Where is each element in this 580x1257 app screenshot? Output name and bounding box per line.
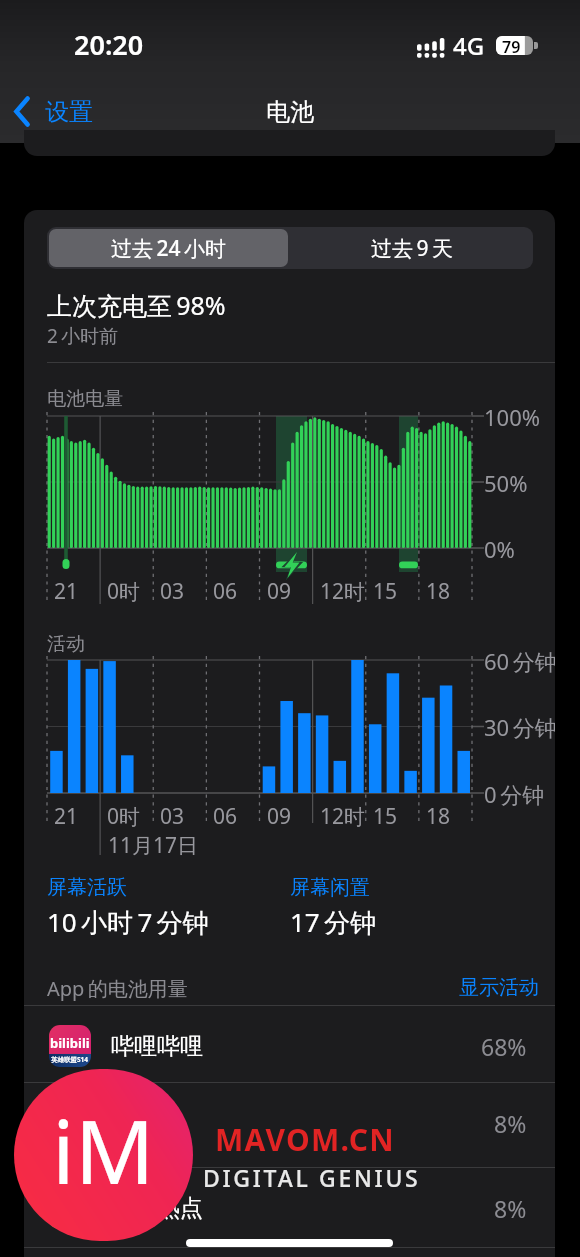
staticText: 18 [426,802,451,831]
staticText: 79 [502,36,521,55]
staticText: 100% [484,402,541,432]
staticText: App 的电池用量 [47,975,188,1002]
button[interactable]: 显示活动 [459,975,539,1000]
staticText: 12时 [320,577,366,606]
staticText: 21 [54,577,79,606]
button[interactable]: 微信 [24,1083,555,1163]
staticText: 11月17日 [108,831,199,860]
staticText: 电池电量 [47,387,123,411]
button[interactable]: 过去 9 天 [290,227,533,269]
staticText: 设置 [45,97,93,127]
staticText: 03 [160,577,185,606]
staticText: 09 [267,577,292,606]
staticText: 8% [494,1193,527,1224]
staticText: 活动 [47,632,85,656]
staticText: 哔哩哔哩 [111,1032,481,1061]
staticText: 0 分钟 [484,779,545,809]
staticText: 微信 [111,1109,494,1138]
staticText: 电池 [266,97,314,127]
staticText: bilibili [50,1034,90,1052]
button[interactable]: bilibili [24,1006,555,1086]
staticText: 个人热点 [111,1194,494,1223]
staticText: 60 分钟 [484,646,555,676]
staticText: 50% [484,468,528,498]
button[interactable]: 个人热点 [24,1168,555,1248]
staticText: DIGITAL GENIUS [203,1162,421,1193]
staticText: 屏幕活跃 [47,875,127,900]
staticText: 12时 [320,802,366,831]
staticText: 10 小时 7 分钟 [47,904,209,940]
staticText: 英雄联盟S14 [51,1055,89,1064]
staticText: 20:20 [74,26,144,63]
staticText: 8% [494,1108,527,1139]
staticText: 上次充电至 98% [47,288,226,322]
staticText: 09 [267,802,292,831]
staticText: 17 分钟 [290,904,377,940]
staticText: 06 [213,577,238,606]
staticText: 03 [160,802,185,831]
staticText: 15 [373,577,398,606]
staticText: 屏幕闲置 [290,875,370,900]
staticText: 4G [453,29,485,62]
staticText: 18 [426,577,451,606]
staticText: 21 [54,802,79,831]
button[interactable]: 过去 24 小时 [49,229,288,267]
staticText: 30 分钟 [484,712,555,742]
staticText: 15 [373,802,398,831]
staticText: 0时 [107,577,141,606]
staticText: 0% [484,534,515,564]
staticText: 2 小时前 [47,323,119,349]
staticText: 过去 24 小时 [111,234,226,263]
staticText: iM [52,1090,155,1210]
staticText: 06 [213,802,238,831]
staticText: 过去 9 天 [371,234,453,263]
staticText: 0时 [107,802,141,831]
button[interactable]: 返回设置 [6,90,101,133]
staticText: 68% [481,1031,527,1062]
staticText: MAVOM.CN [215,1119,396,1160]
